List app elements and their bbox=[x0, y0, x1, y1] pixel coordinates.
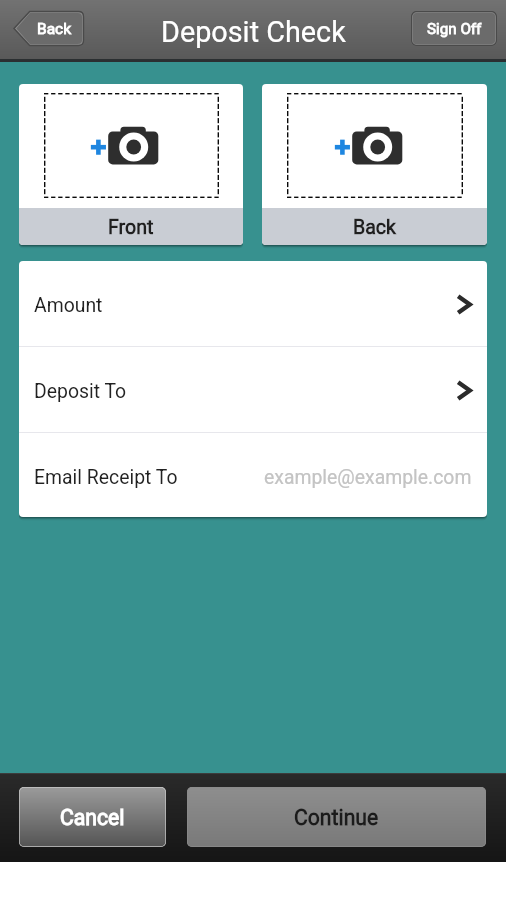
button[interactable]: Sign Off bbox=[411, 11, 497, 46]
button[interactable]: Email Receipt To bbox=[19, 433, 487, 517]
button[interactable]: Back bbox=[13, 11, 84, 46]
button[interactable]: Back bbox=[262, 84, 487, 245]
staticText: Back bbox=[353, 216, 397, 239]
staticText: Continue bbox=[294, 805, 379, 830]
staticText: Deposit To bbox=[34, 380, 127, 403]
button[interactable]: Continue bbox=[187, 787, 486, 847]
staticText: Deposit Check bbox=[161, 15, 346, 49]
staticText: Front bbox=[108, 216, 154, 239]
staticText: Amount bbox=[34, 294, 103, 317]
staticText: Cancel bbox=[60, 805, 125, 830]
staticText: Email Receipt To bbox=[34, 466, 178, 489]
button[interactable]: Amount bbox=[19, 261, 487, 346]
button[interactable]: Cancel bbox=[19, 787, 166, 847]
button[interactable]: Front bbox=[19, 84, 243, 245]
staticText: Back bbox=[37, 20, 72, 38]
button[interactable]: Deposit To bbox=[19, 347, 487, 432]
staticText: example@example.com bbox=[264, 466, 472, 489]
staticText: Sign Off bbox=[427, 20, 482, 38]
